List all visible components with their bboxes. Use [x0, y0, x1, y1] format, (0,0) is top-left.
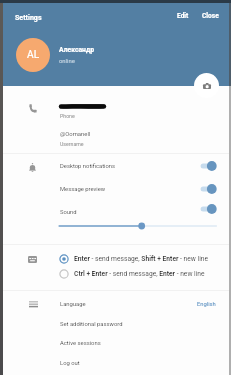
button[interactable]: Sound volume [57, 220, 219, 232]
staticText: Set additional password [60, 321, 123, 328]
staticText: AL [27, 49, 40, 61]
button[interactable]: Language [3, 296, 229, 312]
staticText: Username [60, 141, 84, 147]
staticText: Ctrl + Enter - send message, Enter - new… [74, 270, 205, 278]
button[interactable]: Ctrl + Enter - send message, Enter - new… [3, 267, 229, 281]
button[interactable]: Toggle setting [199, 183, 219, 195]
staticText: Enter - send message, Shift + Enter - ne… [74, 255, 209, 263]
staticText: @Oomanell [60, 131, 91, 138]
staticText: English [197, 301, 216, 308]
staticText: Language [60, 301, 86, 308]
button[interactable]: Active sessions [3, 335, 229, 351]
staticText: Active sessions [60, 340, 101, 347]
button[interactable]: @Oomanell [3, 127, 229, 152]
button[interactable]: Toggle setting [199, 160, 219, 172]
staticText: Close [202, 12, 219, 20]
staticText: Sound [60, 209, 77, 216]
button[interactable]: Profile photo [16, 38, 50, 72]
button[interactable]: Message preview [3, 182, 229, 196]
staticText: Edit [177, 12, 189, 20]
staticText: Desktop notifications [60, 163, 116, 170]
button[interactable]: Close [197, 8, 224, 24]
staticText: online [59, 58, 75, 65]
staticText: Log out [60, 360, 80, 367]
button[interactable]: Log out [3, 355, 229, 371]
button[interactable]: Change profile photo [194, 73, 219, 98]
button[interactable]: Toggle setting [199, 203, 219, 215]
staticText: Message preview [60, 186, 106, 193]
button[interactable]: Desktop notifications [3, 159, 229, 173]
staticText: Phone [60, 113, 75, 119]
button[interactable]: Edit [172, 8, 194, 24]
staticText: Александр [59, 46, 95, 54]
button[interactable]: Sound [3, 206, 229, 219]
button[interactable]: Set additional password [3, 316, 229, 332]
button[interactable]: Settings [10, 8, 47, 26]
button[interactable]: Enter - send message, Shift + Enter - ne… [3, 252, 229, 266]
staticText: Settings [15, 13, 42, 21]
